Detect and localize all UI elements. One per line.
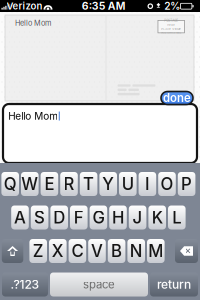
staticText: POSTAGE <box>164 19 178 22</box>
button[interactable]: space <box>50 272 148 296</box>
staticText: K <box>152 207 163 228</box>
button[interactable]: Numbers and symbols <box>2 272 48 296</box>
staticText: X <box>52 241 64 261</box>
staticText: S <box>34 207 45 228</box>
staticText: T <box>83 174 94 194</box>
staticText: done <box>163 91 191 105</box>
button[interactable]: U <box>119 172 137 196</box>
staticText: V <box>91 241 103 261</box>
staticText: B <box>111 241 122 261</box>
button[interactable]: X <box>49 239 67 263</box>
button[interactable]: O <box>158 172 176 196</box>
staticText: .?123 <box>10 277 39 292</box>
button[interactable]: P <box>178 172 195 196</box>
button[interactable]: H <box>109 205 127 229</box>
staticText: H <box>112 207 124 228</box>
staticText: M <box>148 241 163 261</box>
staticText: E <box>44 174 54 194</box>
button[interactable]: F <box>70 205 88 229</box>
staticText: I <box>145 174 150 194</box>
staticText: Hello Mom <box>8 110 58 122</box>
button[interactable]: W <box>21 172 39 196</box>
button[interactable]: G <box>90 205 107 229</box>
button[interactable]: Delete <box>175 239 198 263</box>
staticText: Y <box>102 174 114 194</box>
staticText: W <box>21 174 38 194</box>
staticText: 6:35 AM <box>82 0 126 12</box>
button[interactable]: A <box>11 205 29 229</box>
button[interactable]: M <box>147 239 165 263</box>
staticText: J <box>133 207 143 228</box>
staticText: PLACE STAMP <box>161 27 181 31</box>
staticText: ✕ <box>185 246 192 256</box>
staticText: A <box>14 207 26 228</box>
button[interactable]: V <box>88 239 106 263</box>
staticText: R <box>63 174 74 194</box>
button[interactable]: E <box>41 172 58 196</box>
button[interactable]: B <box>108 239 125 263</box>
button[interactable]: Shift <box>2 239 23 263</box>
button[interactable]: I <box>139 172 156 196</box>
staticText: C <box>71 241 83 261</box>
button[interactable]: Q <box>1 172 19 196</box>
staticText: Verizon <box>6 0 42 12</box>
button[interactable]: K <box>148 205 166 229</box>
staticText: POST OFFICE WILL <box>161 31 181 34</box>
button[interactable]: L <box>168 205 186 229</box>
staticText: return <box>157 277 191 292</box>
staticText: G <box>92 207 104 228</box>
staticText: N <box>130 241 143 261</box>
staticText: Q <box>4 174 17 194</box>
button[interactable]: J <box>129 205 146 229</box>
staticText: F <box>74 207 84 228</box>
staticText: O <box>160 174 173 194</box>
button[interactable]: C <box>69 239 86 263</box>
staticText: 2% <box>164 0 180 12</box>
button[interactable]: S <box>31 205 48 229</box>
staticText: space <box>83 278 115 291</box>
staticText: P <box>181 174 192 194</box>
staticText: U <box>122 174 134 194</box>
button[interactable]: Return <box>150 272 198 296</box>
button[interactable]: done <box>161 91 193 104</box>
staticText: D <box>53 207 65 228</box>
button[interactable]: D <box>50 205 68 229</box>
staticText: Z <box>33 241 44 261</box>
button[interactable]: Z <box>29 239 47 263</box>
button[interactable]: N <box>127 239 145 263</box>
button[interactable]: T <box>80 172 97 196</box>
staticText: HERE <box>167 23 175 27</box>
button[interactable]: Y <box>99 172 117 196</box>
staticText: Hello Mom <box>15 19 51 27</box>
button[interactable]: R <box>60 172 78 196</box>
staticText: L <box>172 207 181 228</box>
